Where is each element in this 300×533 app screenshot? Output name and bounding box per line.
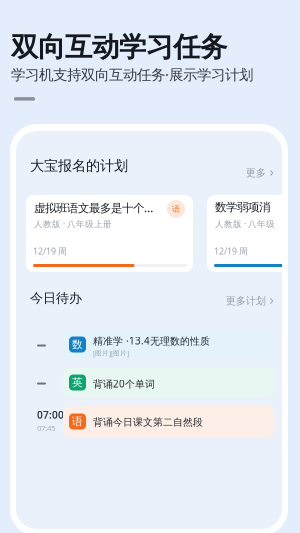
staticText: 英 (72, 376, 83, 389)
staticText: 学习机支持双向互动任务·展示学习计划 (11, 64, 253, 84)
button[interactable]: 数 (63, 329, 274, 360)
staticText: 背诵今日课文第二自然段 (93, 416, 203, 428)
button[interactable]: 更多计划 (216, 294, 273, 308)
staticText: 07:45 (37, 423, 55, 433)
button[interactable]: 英 (63, 368, 274, 397)
staticText: 更多计划 (226, 295, 266, 307)
staticText: 更多 (246, 167, 266, 179)
staticText: 背诵20个单词 (93, 377, 155, 390)
staticText: 12/19 周 (33, 245, 67, 257)
button[interactable]: 虚拟班语文最多是十个… (26, 195, 193, 272)
staticText: 双向互动学习任务 (11, 30, 227, 64)
staticText: 人教版 · 八年级 (215, 218, 275, 230)
staticText: 语 (72, 415, 83, 428)
staticText: 虚拟班语文最多是十个… (34, 200, 153, 216)
staticText: 大宝报名的计划 (30, 157, 128, 175)
staticText: 今日待办 (30, 290, 82, 306)
staticText: [图片][图片] (93, 348, 129, 357)
staticText: 07:00 (37, 408, 64, 422)
staticText: 语 (172, 204, 180, 214)
button[interactable]: 数学弱项消 (207, 195, 300, 272)
staticText: 人教版 · 八年级上册 (34, 218, 112, 230)
staticText: 数学弱项消 (215, 200, 270, 214)
staticText: 12/19 周 (214, 245, 248, 257)
staticText: 数 (72, 338, 83, 351)
button[interactable]: 语 (63, 406, 274, 437)
button[interactable]: 更多 (233, 166, 273, 180)
staticText: 精准学 ·13.4无理数的性质 (93, 334, 210, 347)
